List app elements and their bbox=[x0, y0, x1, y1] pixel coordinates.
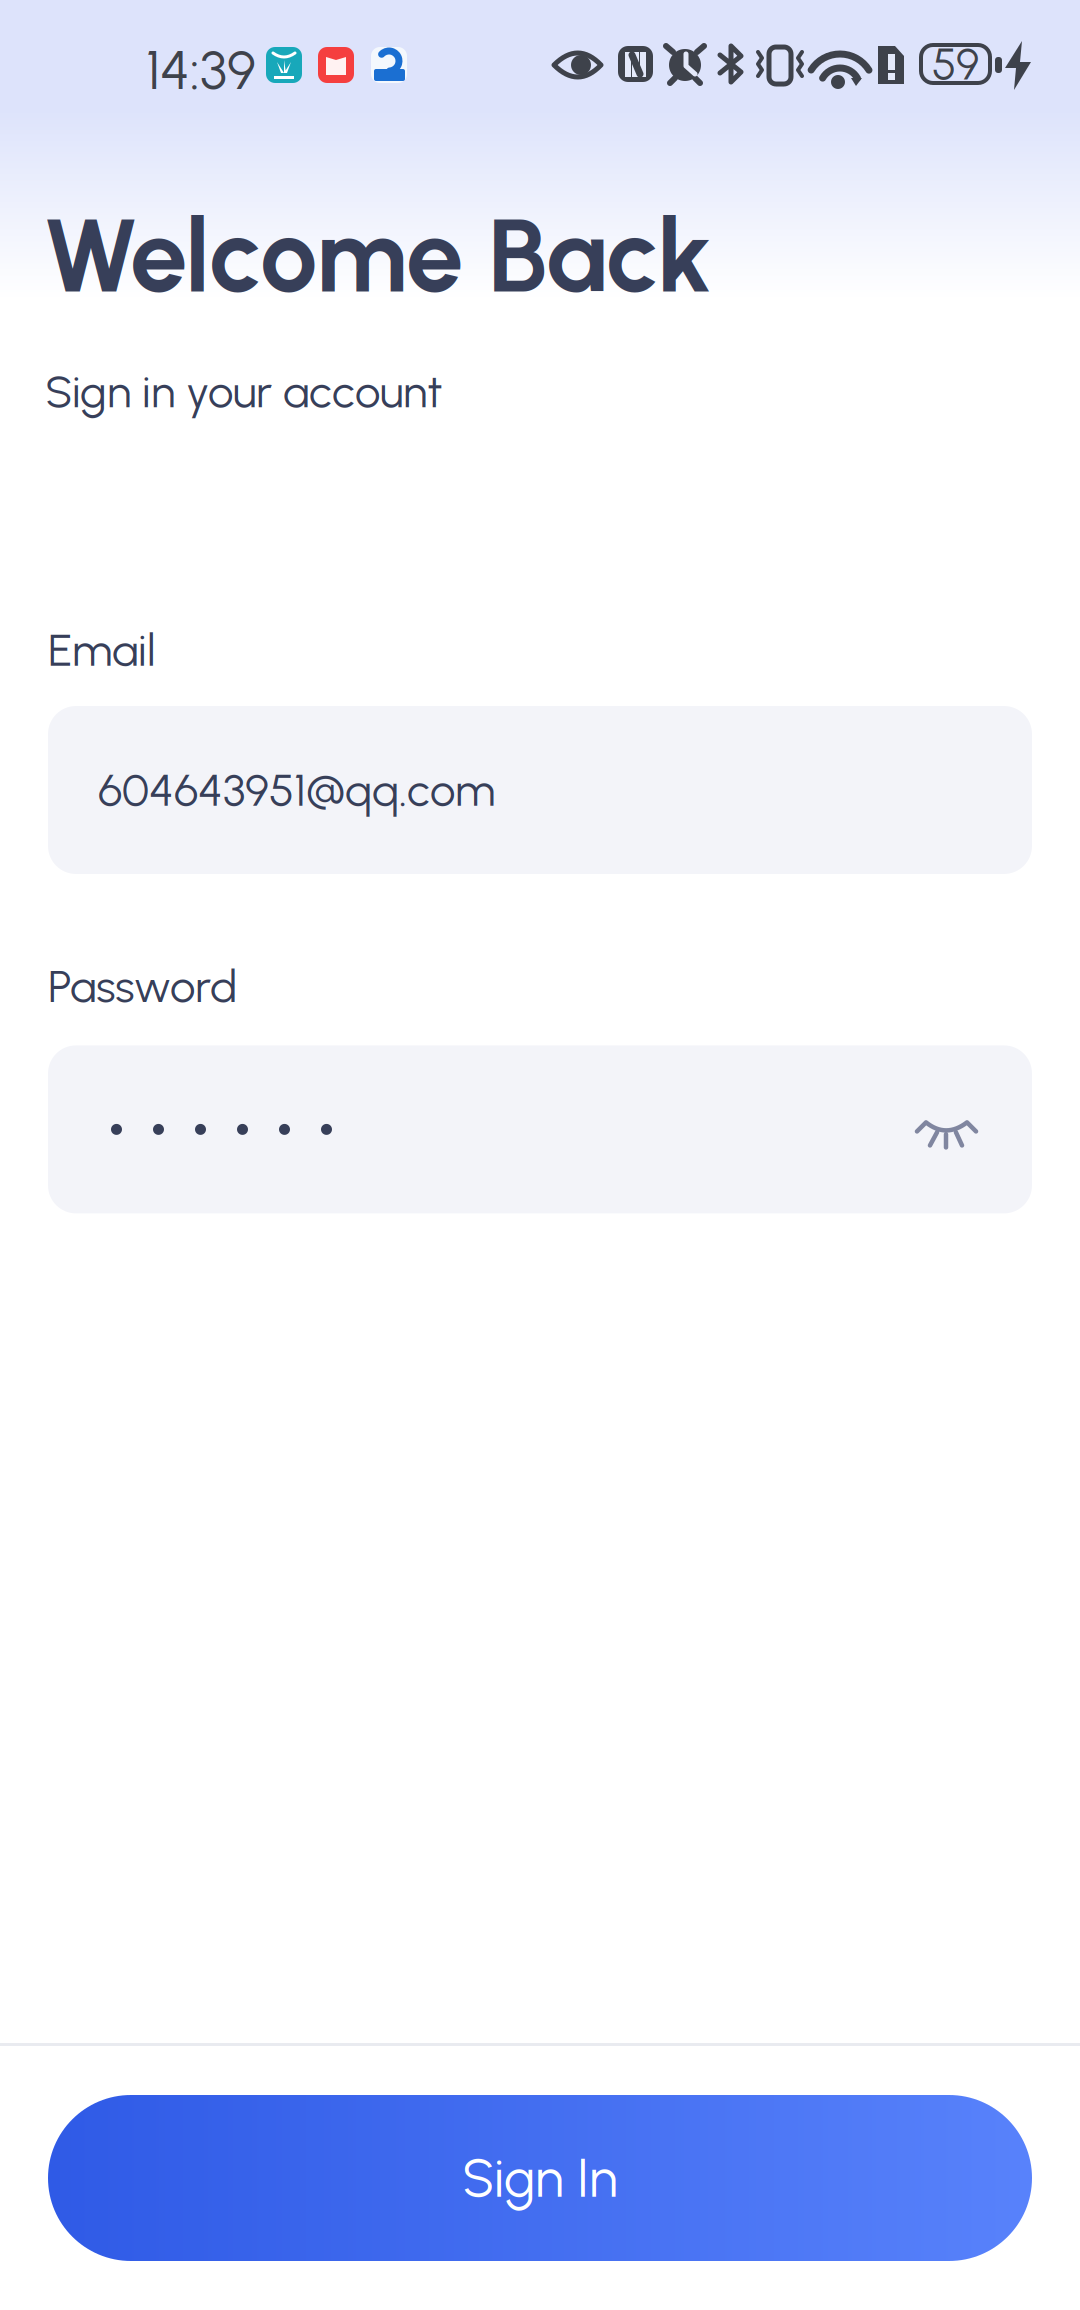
staticText: 59 bbox=[932, 38, 979, 90]
staticText: Sign In bbox=[462, 2146, 618, 2210]
staticText: Password bbox=[48, 959, 237, 1013]
staticText: 604643951@qq.com bbox=[98, 763, 495, 817]
button[interactable]: Show password bbox=[915, 1109, 978, 1149]
staticText: 14:39 bbox=[146, 37, 256, 103]
staticText: Email bbox=[48, 623, 156, 677]
staticText: Welcome Back bbox=[43, 194, 712, 317]
button[interactable]: Sign In bbox=[48, 2095, 1032, 2261]
staticText: Sign in your account bbox=[45, 364, 443, 419]
